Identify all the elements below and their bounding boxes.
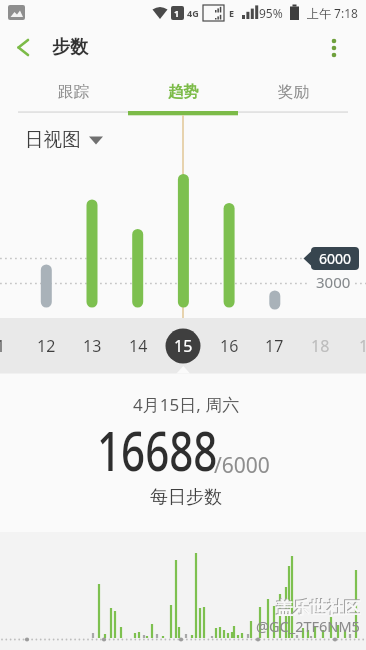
staticText: 奖励 [278,82,309,102]
button[interactable]: 12 [27,334,65,358]
staticText: 13 [83,335,102,357]
button[interactable]: 14 [119,334,157,358]
staticText: 1 [359,335,366,357]
staticText: 1 [0,335,6,357]
staticText: 趋势 [168,82,199,102]
staticText: 4月15日, 周六 [133,393,240,416]
staticText: /6000 [214,451,270,479]
staticText: 4G [187,7,199,19]
staticText: 盖乐世社区 [276,598,361,619]
staticText: 16 [220,335,239,357]
staticText: 18 [311,335,330,357]
button[interactable] [238,64,348,112]
button[interactable] [320,32,350,62]
button[interactable]: 16 [210,334,248,358]
staticText: 跟踪 [58,82,89,102]
staticText: 14 [129,335,148,357]
button[interactable] [128,64,238,112]
button[interactable]: 18 [301,334,339,358]
staticText: 1 [174,7,180,19]
button[interactable]: 1 [354,334,366,358]
staticText: 每日步数 [150,486,222,509]
staticText: 17 [265,335,284,357]
staticText: 15 [174,335,193,357]
button[interactable]: 13 [73,334,111,358]
staticText: @GC_2TF6NM5 [256,616,360,636]
button[interactable] [18,64,128,112]
staticText: 上午 7:18 [307,5,358,21]
staticText: 盖乐世社区 [275,597,360,618]
staticText: 步数 [52,36,88,59]
button[interactable]: 1 [0,334,11,358]
button[interactable] [8,32,44,62]
staticText: 95% [259,5,283,21]
button[interactable]: 17 [255,334,293,358]
staticText: 16688 [97,413,218,479]
staticText: E [229,7,235,19]
staticText: 12 [37,335,56,357]
button[interactable]: 日视图 [18,126,110,153]
staticText: 6000 [319,249,352,268]
staticText: 3000 [316,272,351,292]
staticText: 日视图 [25,128,81,151]
button[interactable]: 15 [164,334,202,358]
